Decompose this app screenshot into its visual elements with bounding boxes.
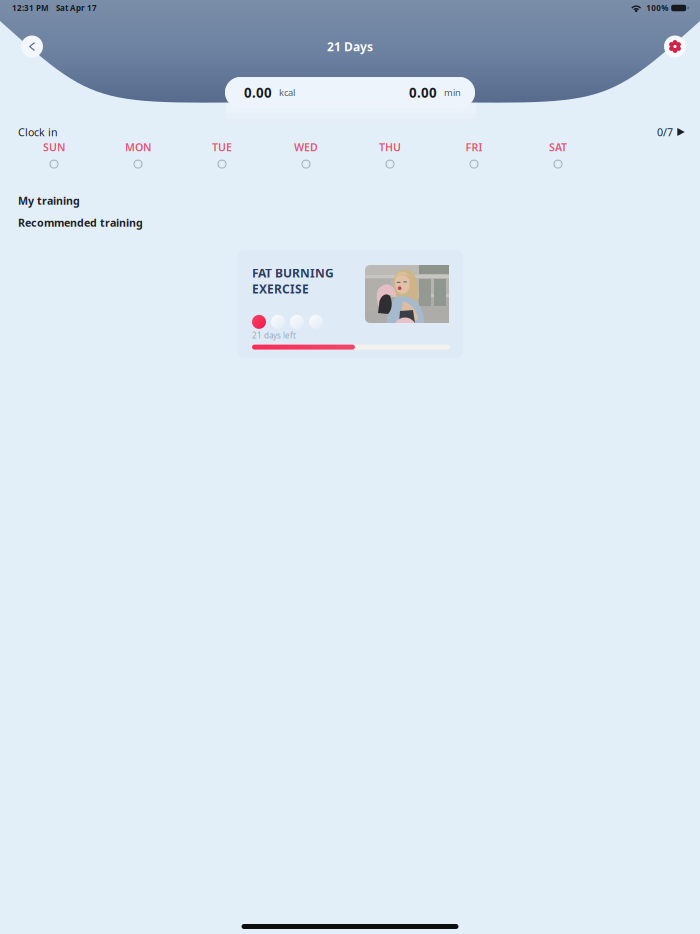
staticText: SAT — [549, 140, 567, 154]
staticText: Sat Apr 17 — [56, 3, 97, 13]
staticText: 0/7 — [657, 125, 673, 139]
staticText: MON — [125, 140, 151, 154]
button[interactable]: MON — [96, 140, 180, 168]
staticText: FRI — [465, 140, 482, 154]
staticText: kcal — [279, 86, 295, 99]
button[interactable]: TUE — [180, 140, 264, 168]
button[interactable]: FRI — [432, 140, 516, 168]
button[interactable]: WED — [264, 140, 348, 168]
staticText: 21 days left — [252, 330, 296, 341]
staticText: Clock in — [18, 125, 58, 139]
button[interactable]: THU — [348, 140, 432, 168]
staticText: SUN — [43, 140, 65, 154]
staticText: My training — [18, 193, 80, 208]
staticText: TUE — [212, 140, 232, 154]
button[interactable]: Recommended training — [18, 216, 143, 229]
staticText: THU — [379, 140, 401, 154]
staticText: Recommended training — [18, 215, 143, 230]
button[interactable]: Settings — [664, 35, 686, 57]
button[interactable]: FAT BURNING — [237, 250, 463, 358]
staticText: 0.00 — [409, 84, 437, 101]
staticText: EXERCISE — [252, 281, 309, 297]
button[interactable]: SAT — [516, 140, 600, 168]
staticText: WED — [294, 140, 318, 154]
staticText: 21 Days — [327, 38, 373, 54]
staticText: 12:31 PM — [12, 3, 49, 13]
button[interactable]: SUN — [12, 140, 96, 168]
button[interactable]: 0/7 — [657, 125, 685, 139]
button[interactable]: My training — [18, 194, 80, 207]
staticText: min — [444, 86, 461, 99]
staticText: 100% — [646, 3, 668, 13]
staticText: FAT BURNING — [252, 265, 334, 281]
staticText: 0.00 — [244, 84, 272, 101]
button[interactable]: Back — [21, 35, 43, 57]
